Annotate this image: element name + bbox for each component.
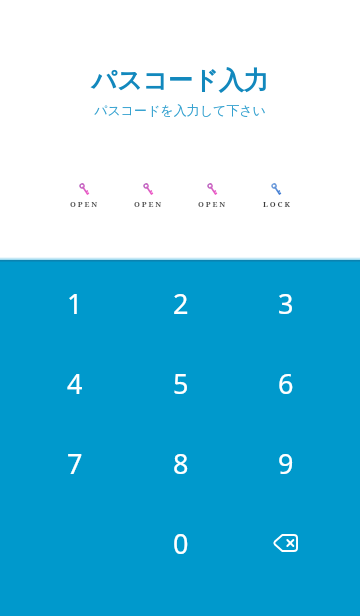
staticText: 1 — [67, 285, 83, 322]
staticText: パスコード入力 — [0, 65, 360, 96]
button[interactable]: 0 — [128, 503, 233, 583]
staticText: 8 — [173, 445, 189, 482]
button[interactable]: 7 — [22, 423, 128, 503]
staticText: 5 — [173, 365, 189, 402]
staticText: 9 — [278, 445, 294, 482]
button[interactable]: OPEN — [52, 182, 116, 209]
staticText: パスコードを入力して下さい — [0, 102, 360, 118]
button[interactable]: 9 — [233, 423, 338, 503]
staticText: 7 — [67, 445, 83, 482]
button[interactable]: 6 — [233, 343, 338, 423]
button[interactable]: 1 — [22, 263, 128, 343]
staticText: OPEN — [70, 199, 100, 209]
staticText: LOCK — [263, 199, 292, 209]
button[interactable]: LOCK — [244, 182, 308, 209]
button[interactable]: 2 — [128, 263, 233, 343]
button[interactable]: 8 — [128, 423, 233, 503]
button[interactable]: OPEN — [116, 182, 180, 209]
staticText: OPEN — [134, 199, 164, 209]
button[interactable]: 3 — [233, 263, 338, 343]
button[interactable]: OPEN — [180, 182, 244, 209]
staticText: 2 — [173, 285, 189, 322]
staticText: 6 — [278, 365, 294, 402]
staticText: 4 — [67, 365, 83, 402]
button[interactable]: 5 — [128, 343, 233, 423]
staticText: 3 — [278, 285, 294, 322]
button[interactable]: Delete — [233, 503, 338, 583]
staticText: OPEN — [198, 199, 228, 209]
button[interactable]: 4 — [22, 343, 128, 423]
staticText: 0 — [173, 525, 189, 562]
